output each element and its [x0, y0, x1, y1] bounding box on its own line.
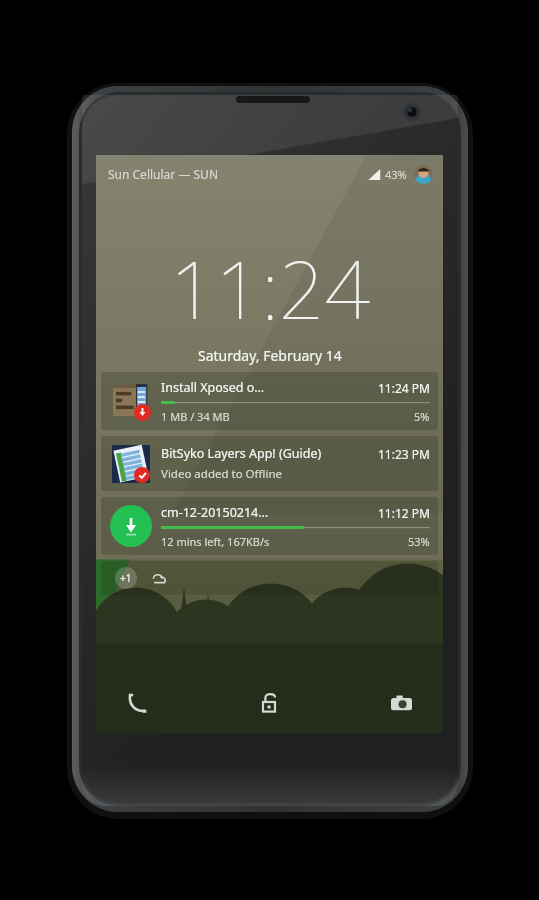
button[interactable]: +1	[101, 561, 438, 595]
staticText: 43%	[385, 167, 407, 182]
staticText: 11:23 PM	[378, 446, 430, 462]
button[interactable]: Camera	[381, 683, 421, 723]
staticText: 11:24 PM	[378, 380, 430, 396]
button[interactable]: Unlock	[249, 683, 289, 723]
staticText: 5%	[414, 409, 430, 424]
staticText: Video added to Offline	[161, 466, 283, 482]
button[interactable]: Phone	[118, 683, 158, 723]
staticText: 11:12 PM	[378, 505, 430, 521]
button[interactable]: Install Xposed on Android 5.0 Lollip··	[101, 372, 438, 430]
staticText: +1	[120, 571, 132, 585]
staticText: Sun Cellular — SUN	[108, 166, 219, 182]
staticText: BitSyko Layers App! (Guide)	[161, 445, 322, 462]
staticText: 11:24	[170, 233, 370, 342]
staticText: cm-12-20150214-NIGHTLY-mako.zip	[161, 504, 269, 521]
button[interactable]: Download	[110, 505, 152, 547]
button[interactable]: BitSyko Layers App! (Guide)	[101, 436, 438, 491]
staticText: 1 MB / 34 MB	[161, 409, 230, 424]
button[interactable]: Download	[101, 497, 438, 555]
staticText: Saturday, February 14	[198, 346, 342, 365]
staticText: Install Xposed on Android 5.0 Lollip··	[161, 379, 269, 396]
staticText: 53%	[408, 534, 430, 549]
staticText: 12 mins left, 167KB/s	[161, 534, 270, 549]
other: Cloud	[150, 570, 167, 587]
button[interactable]: User profile	[414, 165, 433, 184]
